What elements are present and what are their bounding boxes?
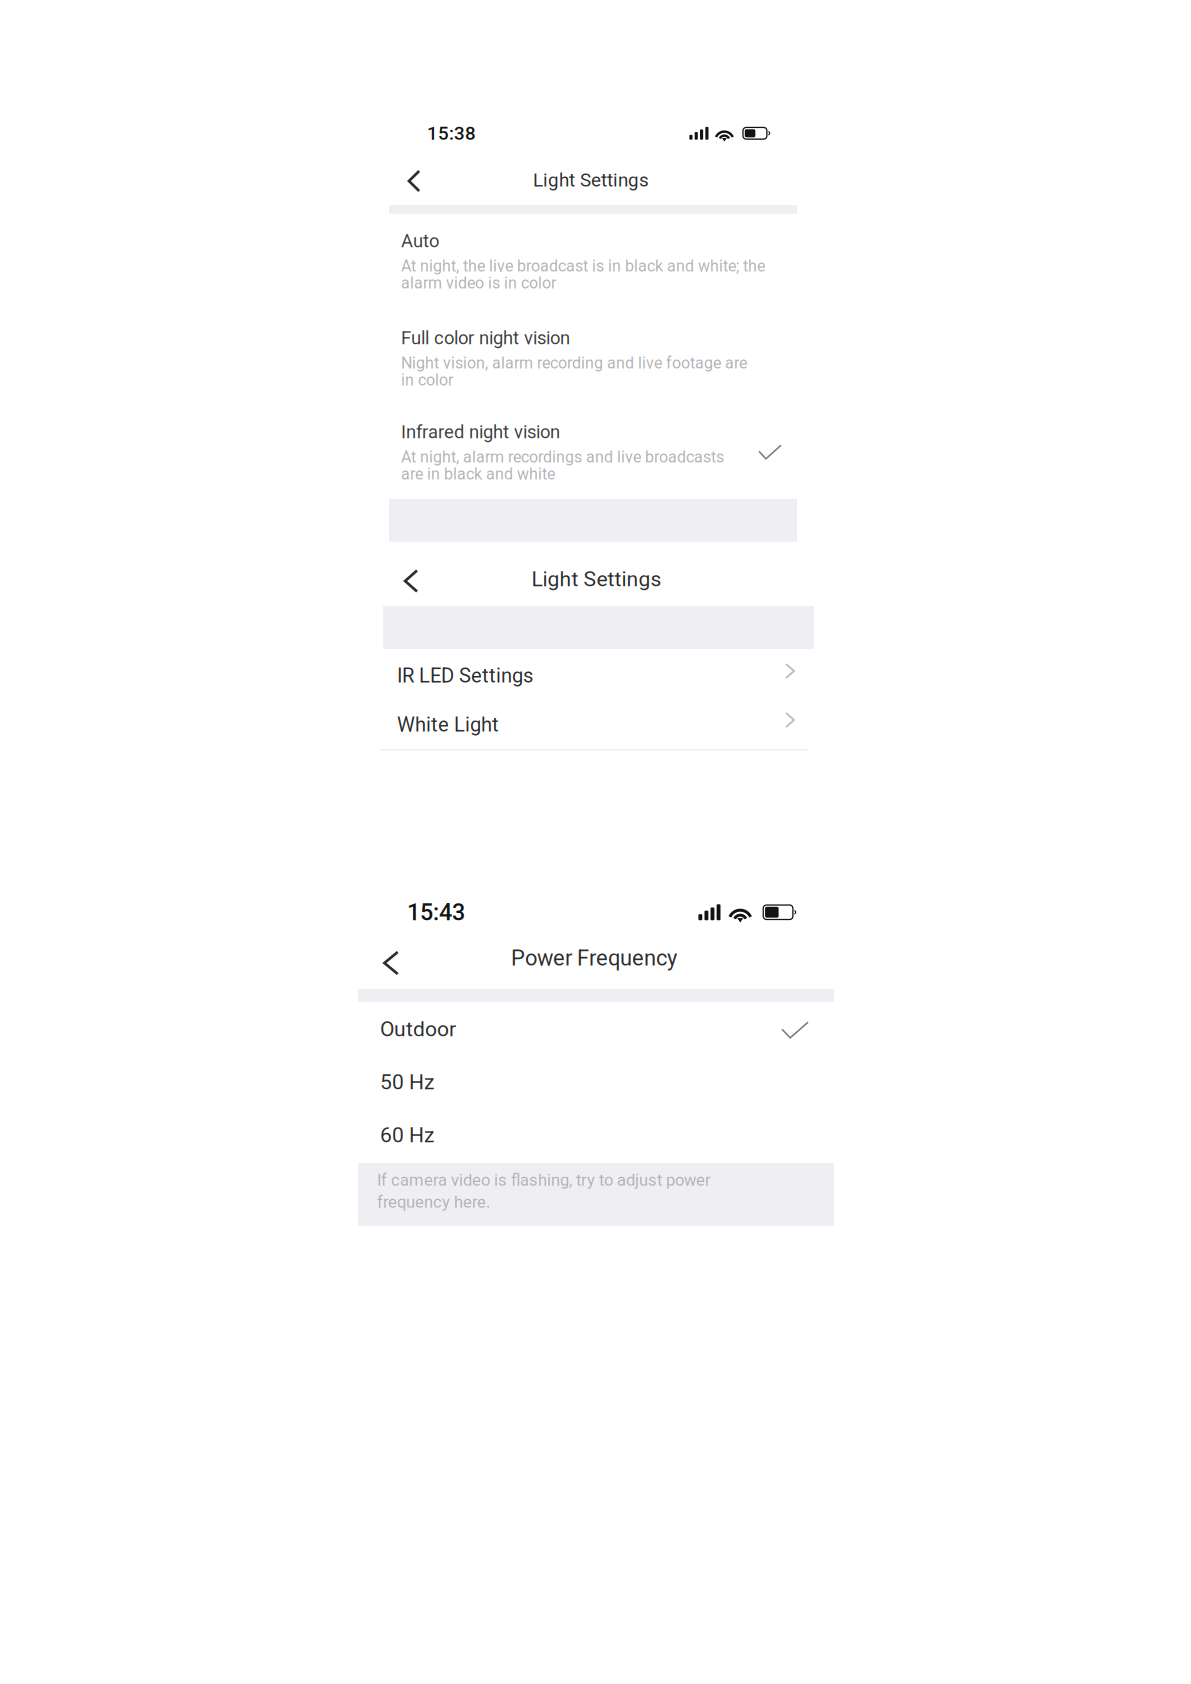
staticText: Outdoor: [380, 1017, 456, 1041]
staticText: 15:38: [427, 122, 476, 144]
button[interactable]: 50 Hz: [358, 1061, 834, 1114]
staticText: are in black and white: [401, 465, 555, 483]
staticText: Power Frequency: [511, 945, 677, 971]
staticText: Infrared night vision: [401, 421, 560, 443]
staticText: 60 Hz: [380, 1123, 434, 1147]
button[interactable]: Full color night vision: [401, 329, 797, 389]
button[interactable]: White Light: [383, 701, 814, 750]
staticText: Auto: [401, 230, 439, 252]
staticText: Light Settings: [531, 567, 661, 591]
button[interactable]: Back: [399, 170, 429, 192]
staticText: At night, the live broadcast is in black…: [401, 257, 765, 275]
button[interactable]: Back: [396, 570, 426, 592]
staticText: IR LED Settings: [397, 664, 533, 687]
staticText: Light Settings: [533, 169, 649, 191]
staticText: 50 Hz: [380, 1070, 434, 1094]
button[interactable]: Infrared night vision: [401, 423, 797, 483]
button[interactable]: 60 Hz: [358, 1114, 834, 1167]
button[interactable]: Outdoor: [358, 1008, 834, 1061]
staticText: At night, alarm recordings and live broa…: [401, 448, 724, 466]
staticText: frequency here.: [377, 1192, 490, 1212]
button[interactable]: Back: [376, 952, 406, 974]
staticText: Full color night vision: [401, 327, 570, 349]
staticText: alarm video is in color: [401, 274, 556, 292]
staticText: White Light: [397, 713, 499, 736]
staticText: 15:43: [407, 899, 465, 926]
button[interactable]: Auto: [401, 232, 797, 292]
staticText: in color: [401, 371, 453, 389]
staticText: Night vision, alarm recording and live f…: [401, 354, 747, 372]
staticText: If camera video is flashing, try to adju…: [377, 1170, 711, 1190]
button[interactable]: IR LED Settings: [383, 652, 814, 701]
